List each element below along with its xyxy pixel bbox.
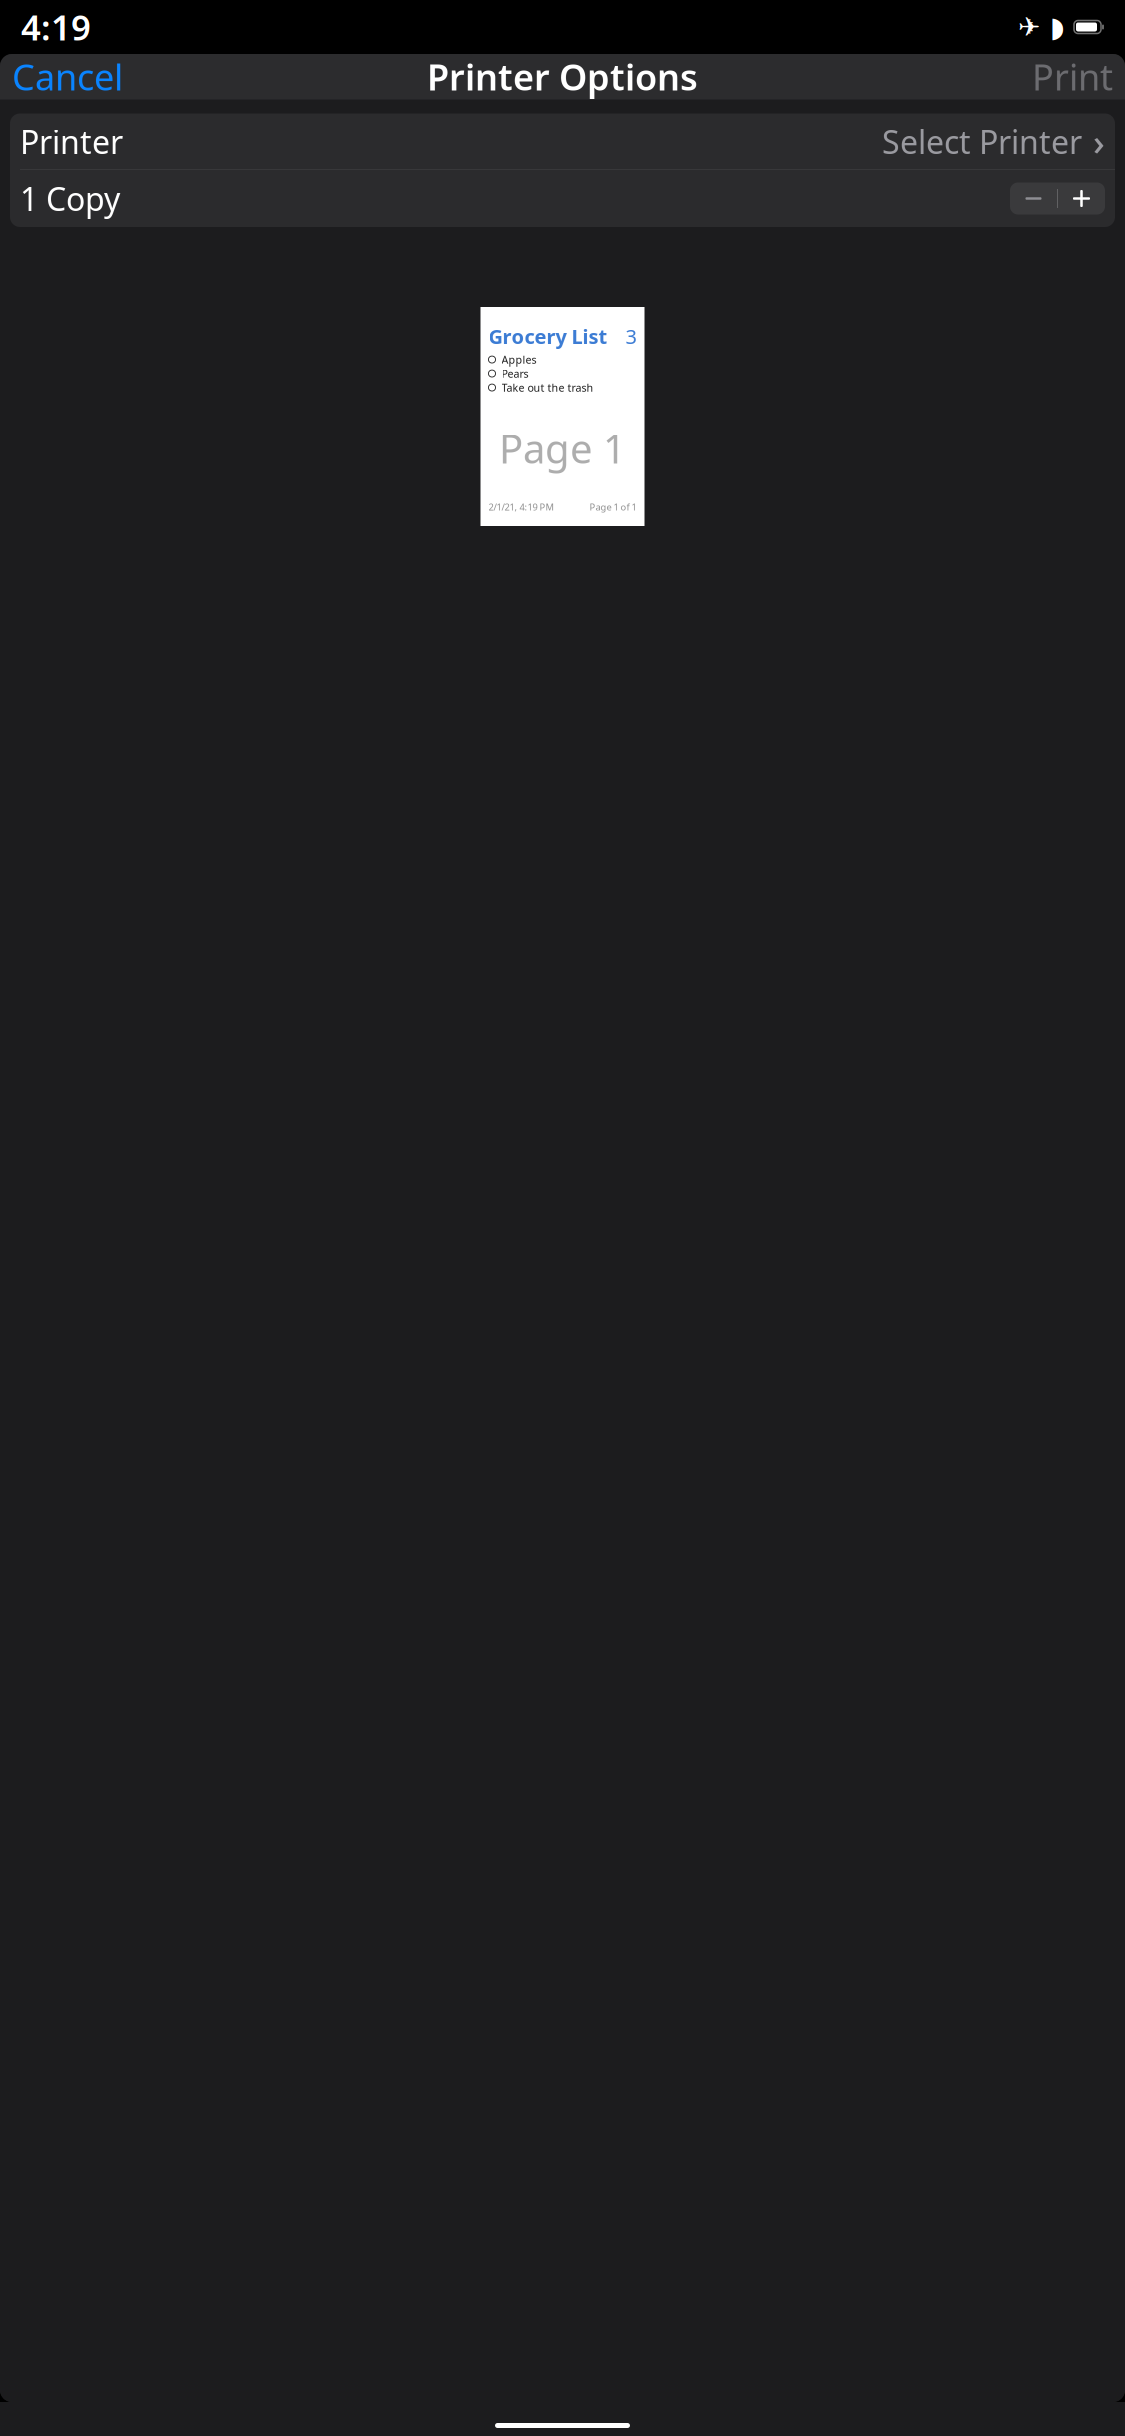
staticText: Select Printer <box>882 120 1082 163</box>
button[interactable]: Decrease number of copies <box>1010 182 1057 214</box>
staticText: Page 1 <box>499 421 626 475</box>
staticText: ◗ <box>1050 11 1065 43</box>
staticText: 1 Copy <box>20 177 120 220</box>
staticText: ✈ <box>1018 12 1040 42</box>
staticText: Cancel <box>12 53 123 100</box>
staticText: Printer <box>20 120 123 163</box>
staticText: Take out the trash <box>501 380 593 395</box>
staticText: 4:19 <box>21 4 91 50</box>
staticText: Print <box>1032 53 1113 100</box>
staticText: Printer Options <box>427 53 698 100</box>
button[interactable]: Cancel <box>1 44 134 109</box>
button[interactable]: Printer <box>10 113 1115 169</box>
staticText: Pears <box>501 366 528 381</box>
staticText: Page 1 of 1 <box>589 501 636 513</box>
staticText: › <box>1093 118 1105 165</box>
staticText: Grocery List <box>488 323 607 350</box>
staticText: Apples <box>501 352 536 367</box>
staticText: 2/1/21, 4:19 PM <box>488 501 553 513</box>
staticText: 3 <box>625 323 636 350</box>
button[interactable]: Increase number of copies <box>1058 182 1105 214</box>
button[interactable]: Print <box>1021 44 1124 109</box>
